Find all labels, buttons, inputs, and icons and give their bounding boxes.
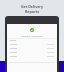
- staticText: Get Delivery Reports: [0, 4, 64, 14]
- other: Delivered: [30, 28, 34, 32]
- staticText: Delivery Confirmed: [21, 34, 43, 37]
